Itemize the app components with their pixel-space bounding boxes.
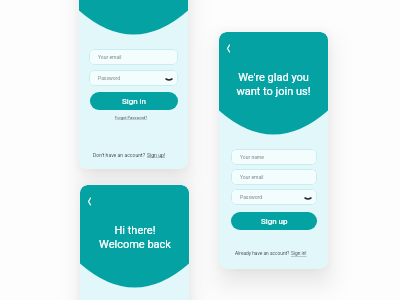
button[interactable]: Sign in! — [291, 251, 307, 257]
button[interactable]: Forgot Password? — [115, 115, 148, 120]
staticText: Your name — [240, 154, 264, 160]
button[interactable]: Sign up — [231, 212, 317, 230]
staticText: Your email — [98, 54, 122, 60]
staticText: Your email — [240, 174, 264, 180]
button[interactable]: Sign in — [90, 92, 178, 110]
button[interactable]: Password — [89, 70, 178, 86]
staticText: Sign up — [261, 217, 288, 226]
staticText: Password — [240, 194, 263, 200]
button[interactable]: Back — [222, 42, 235, 55]
staticText: Already have an account? — [235, 251, 291, 257]
button[interactable]: Back — [83, 195, 96, 208]
staticText: Hi there! Welcome back — [99, 224, 171, 250]
button[interactable]: Your name — [231, 149, 317, 165]
staticText: Password — [98, 75, 121, 81]
button[interactable]: Sign up! — [147, 152, 166, 158]
staticText: We're glad you want to join us! — [236, 71, 311, 97]
staticText: Sign in — [122, 97, 146, 106]
button[interactable]: Your email — [89, 49, 178, 65]
button[interactable]: Your email — [231, 169, 317, 185]
staticText: Don't have an account? — [93, 152, 147, 158]
button[interactable]: Password — [231, 189, 317, 205]
